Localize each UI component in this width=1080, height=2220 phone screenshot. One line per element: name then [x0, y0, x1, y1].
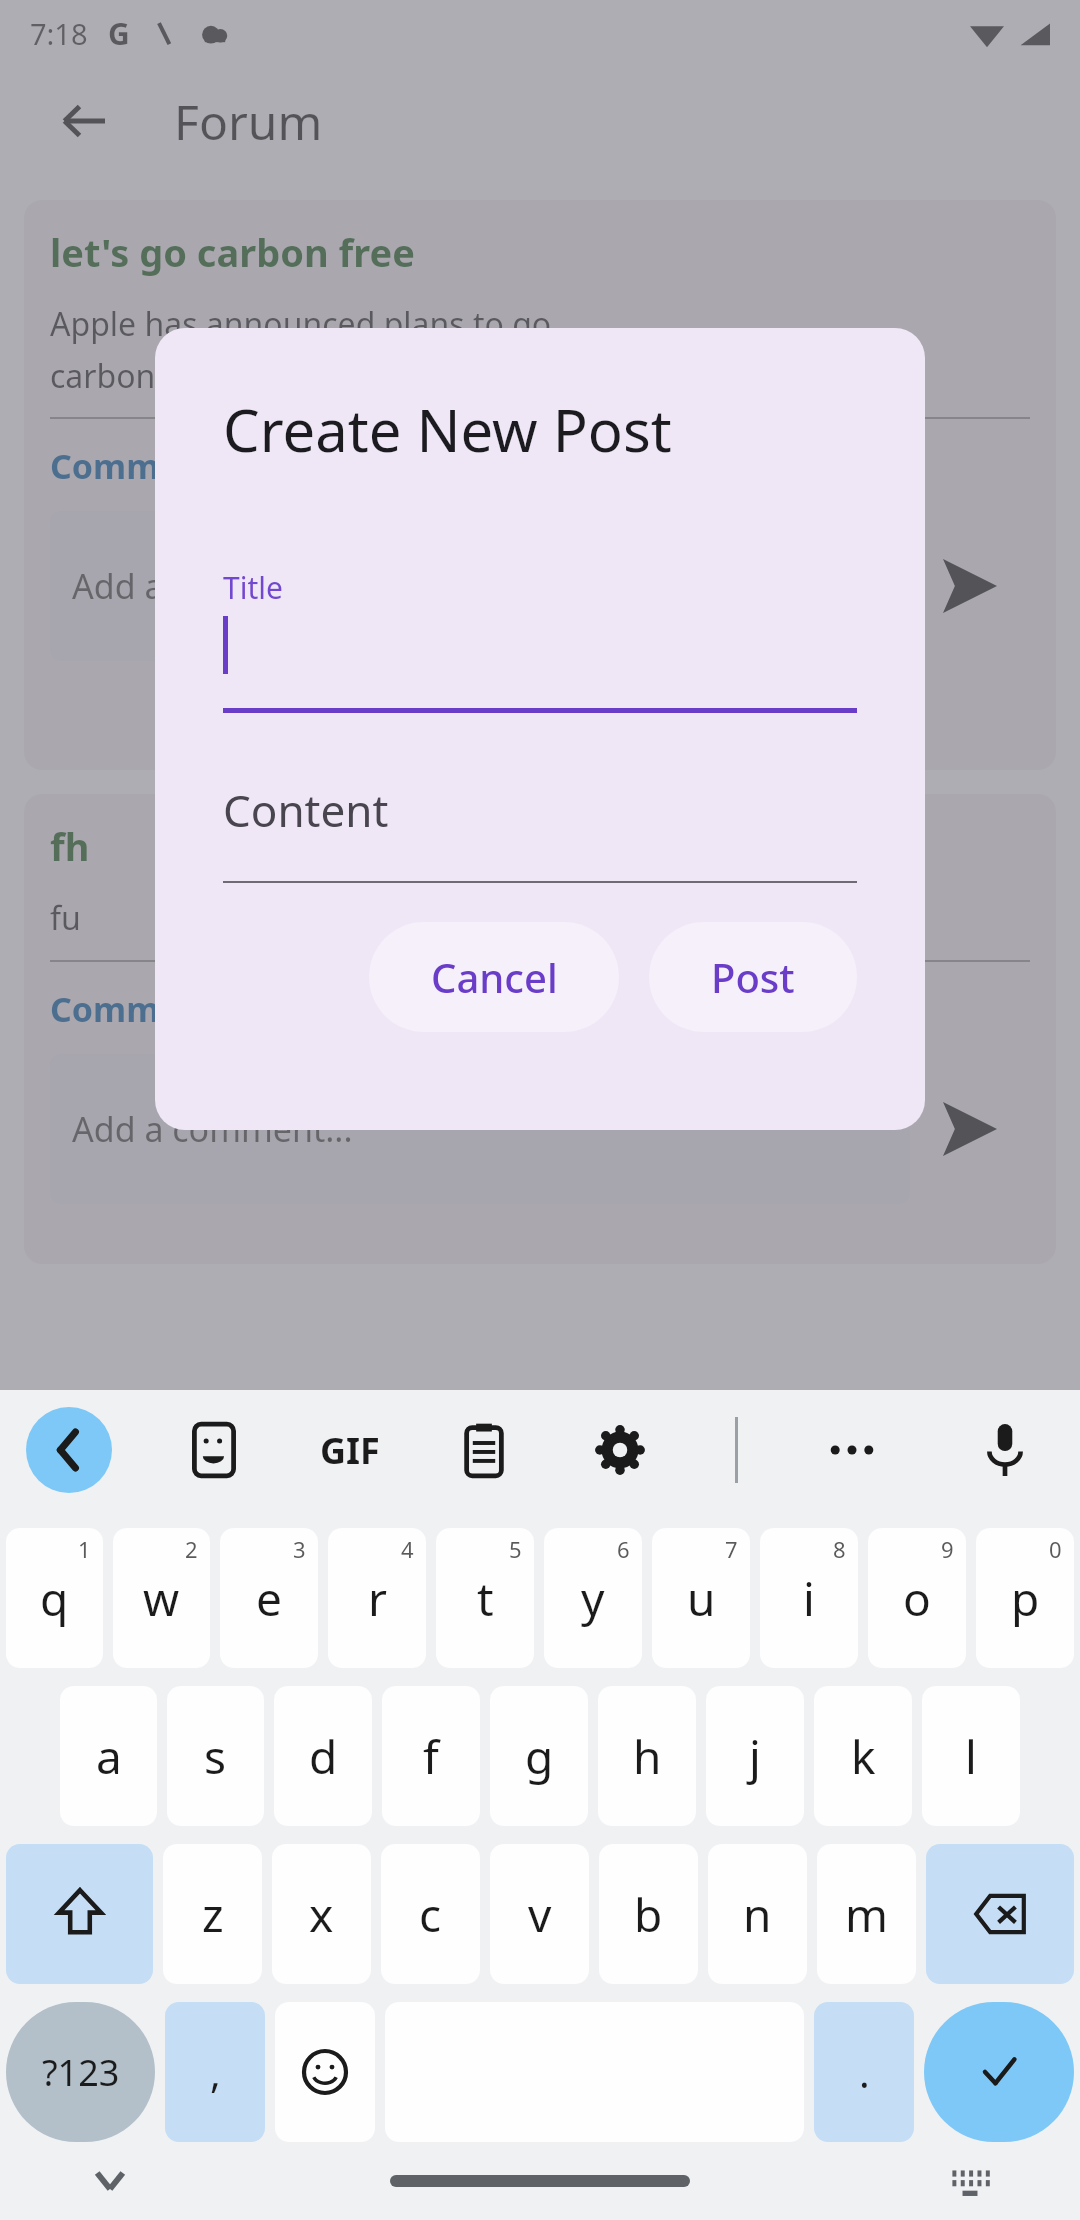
staticText: fu: [50, 896, 81, 940]
button[interactable]: o: [868, 1528, 966, 1668]
staticText: b: [634, 1883, 663, 1946]
button[interactable]: Stickers: [176, 1412, 252, 1488]
staticText: 9: [941, 1534, 954, 1564]
button[interactable]: p: [976, 1528, 1074, 1668]
button[interactable]: Voice input: [966, 1411, 1044, 1489]
staticText: Add a comment...: [72, 1106, 353, 1152]
staticText: 5: [509, 1534, 522, 1564]
button[interactable]: ?123: [6, 2002, 155, 2142]
button[interactable]: r: [328, 1528, 426, 1668]
button[interactable]: ,: [165, 2002, 265, 2142]
button[interactable]: Done: [924, 2002, 1074, 2142]
staticText: g: [525, 1725, 554, 1788]
staticText: 7:18: [30, 14, 88, 53]
button[interactable]: z: [163, 1844, 262, 1984]
button[interactable]: Add a comment...: [50, 511, 910, 661]
button[interactable]: v: [490, 1844, 589, 1984]
button[interactable]: GIF: [314, 1414, 386, 1486]
button[interactable]: Add a comment...: [50, 1054, 910, 1204]
button[interactable]: .: [814, 2002, 914, 2142]
button[interactable]: Emoji: [275, 2002, 375, 2142]
staticText: 6: [617, 1534, 630, 1564]
staticText: v: [528, 1883, 552, 1946]
button[interactable]: i: [760, 1528, 858, 1668]
button[interactable]: b: [599, 1844, 698, 1984]
button[interactable]: Send: [910, 1069, 1030, 1189]
button[interactable]: Expand toolbar: [26, 1407, 112, 1493]
button[interactable]: Cancel: [369, 922, 619, 1032]
staticText: k: [851, 1725, 876, 1788]
button[interactable]: a: [60, 1686, 157, 1826]
staticText: Content: [223, 780, 389, 840]
staticText: Add a comment...: [72, 563, 353, 609]
button[interactable]: k: [814, 1686, 912, 1826]
staticText: z: [202, 1883, 224, 1946]
staticText: p: [1011, 1567, 1040, 1630]
button[interactable]: t: [436, 1528, 534, 1668]
staticText: f: [423, 1725, 439, 1788]
staticText: 3: [293, 1534, 306, 1564]
button[interactable]: n: [708, 1844, 807, 1984]
staticText: ,: [210, 2045, 221, 2099]
staticText: t: [477, 1567, 494, 1630]
staticText: Create New Post: [223, 390, 672, 469]
staticText: .: [859, 2045, 870, 2099]
button[interactable]: Clipboard: [446, 1412, 522, 1488]
staticText: Forum: [174, 89, 323, 154]
button[interactable]: j: [706, 1686, 804, 1826]
button[interactable]: Switch keyboard: [860, 2142, 1080, 2220]
staticText: 2: [185, 1534, 198, 1564]
staticText: m: [845, 1883, 889, 1946]
button[interactable]: q: [6, 1528, 103, 1668]
staticText: u: [687, 1567, 716, 1630]
staticText: 8: [833, 1534, 846, 1564]
staticText: a: [96, 1725, 122, 1788]
button[interactable]: u: [652, 1528, 750, 1668]
staticText: Comments:: [50, 986, 244, 1032]
button[interactable]: s: [167, 1686, 264, 1826]
button[interactable]: Send: [910, 526, 1030, 646]
staticText: l: [965, 1725, 977, 1788]
staticText: h: [633, 1725, 662, 1788]
button[interactable]: fh: [24, 794, 1056, 1264]
button[interactable]: d: [274, 1686, 372, 1826]
button[interactable]: m: [817, 1844, 916, 1984]
staticText: q: [40, 1567, 69, 1630]
button[interactable]: More options: [816, 1414, 888, 1486]
staticText: G: [108, 13, 130, 54]
button[interactable]: Back: [48, 86, 118, 156]
staticText: 4: [401, 1534, 414, 1564]
staticText: y: [581, 1567, 605, 1630]
staticText: Comments:: [50, 443, 244, 489]
staticText: n: [743, 1883, 772, 1946]
button[interactable]: Hide keyboard: [0, 2142, 220, 2220]
button[interactable]: f: [382, 1686, 480, 1826]
button[interactable]: e: [220, 1528, 318, 1668]
staticText: 7: [725, 1534, 738, 1564]
staticText: Apple has announced plans to go carbon: [50, 302, 552, 397]
button[interactable]: c: [381, 1844, 480, 1984]
button[interactable]: w: [113, 1528, 210, 1668]
staticText: Cancel: [431, 950, 558, 1004]
button[interactable]: let's go carbon free: [24, 200, 1056, 770]
button[interactable]: Settings: [582, 1412, 658, 1488]
button[interactable]: y: [544, 1528, 642, 1668]
button[interactable]: x: [272, 1844, 371, 1984]
staticText: fh: [50, 820, 90, 872]
staticText: w: [143, 1567, 180, 1630]
staticText: Post: [711, 950, 795, 1004]
staticText: o: [903, 1567, 931, 1630]
button[interactable]: h: [598, 1686, 696, 1826]
staticText: s: [204, 1725, 227, 1788]
staticText: i: [803, 1567, 815, 1630]
button[interactable]: Post: [649, 922, 857, 1032]
button[interactable]: g: [490, 1686, 588, 1826]
button[interactable]: Shift: [6, 1844, 153, 1984]
button[interactable]: l: [922, 1686, 1020, 1826]
staticText: GIF: [320, 1426, 380, 1475]
staticText: j: [749, 1725, 761, 1788]
staticText: e: [256, 1567, 282, 1630]
staticText: c: [419, 1883, 442, 1946]
button[interactable]: Backspace: [926, 1844, 1074, 1984]
